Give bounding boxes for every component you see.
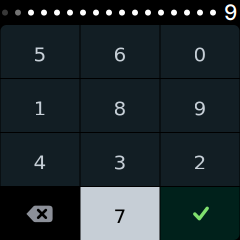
- staticText: 6: [113, 43, 126, 66]
- button[interactable]: 5: [0, 25, 79, 78]
- staticText: 8: [113, 97, 126, 120]
- staticText: 9: [193, 97, 206, 120]
- button[interactable]: 7: [80, 187, 159, 240]
- button[interactable]: Delete: [0, 187, 79, 240]
- staticText: 7: [113, 205, 126, 228]
- staticText: 2: [193, 151, 206, 174]
- staticText: 9: [224, 0, 237, 25]
- button[interactable]: 2: [160, 133, 239, 186]
- staticText: 0: [193, 43, 206, 66]
- button[interactable]: 1: [0, 79, 79, 132]
- button[interactable]: 0: [160, 25, 239, 78]
- staticText: 5: [33, 43, 46, 66]
- button[interactable]: 8: [80, 79, 159, 132]
- button[interactable]: 3: [80, 133, 159, 186]
- staticText: 1: [33, 97, 46, 120]
- staticText: 3: [113, 151, 126, 174]
- button[interactable]: Confirm: [160, 187, 239, 240]
- button[interactable]: 9: [160, 79, 239, 132]
- button[interactable]: 4: [0, 133, 79, 186]
- button[interactable]: 6: [80, 25, 159, 78]
- staticText: 4: [33, 151, 46, 174]
